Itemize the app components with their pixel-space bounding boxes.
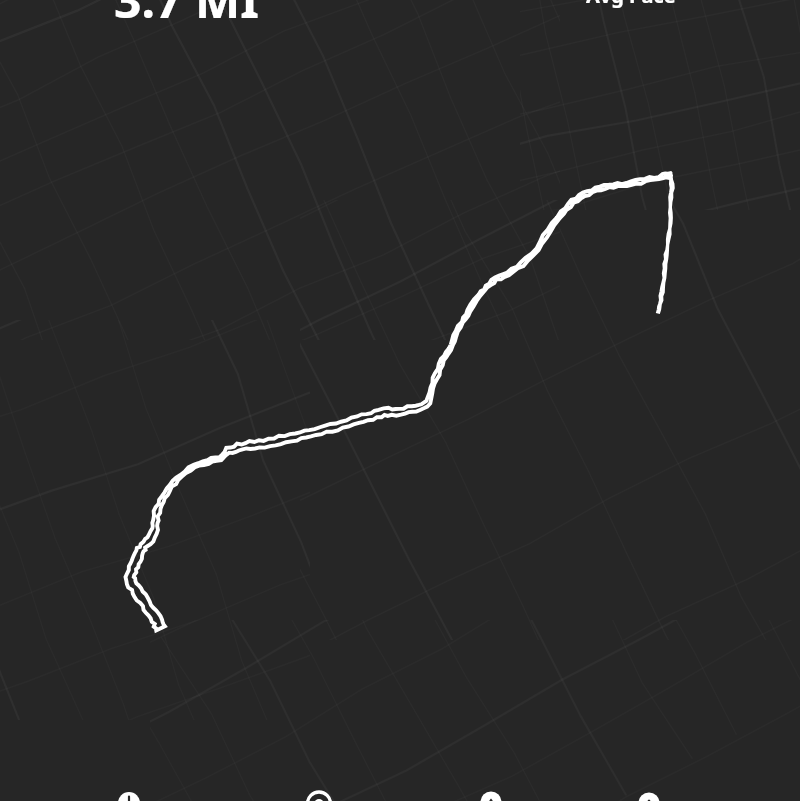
- staticText: 3.7 MI: [114, 0, 259, 32]
- button[interactable]: Calories burned: [460, 785, 615, 801]
- button[interactable]: Activity route map: [0, 0, 800, 801]
- button[interactable]: Elapsed time: [110, 785, 290, 801]
- staticText: Avg Pace: [586, 0, 676, 9]
- button[interactable]: Average pace: [290, 785, 460, 801]
- button[interactable]: 3.7 MI: [0, 0, 380, 20]
- button[interactable]: Avg Pace: [420, 0, 800, 20]
- button[interactable]: Elevation gain: [615, 785, 765, 801]
